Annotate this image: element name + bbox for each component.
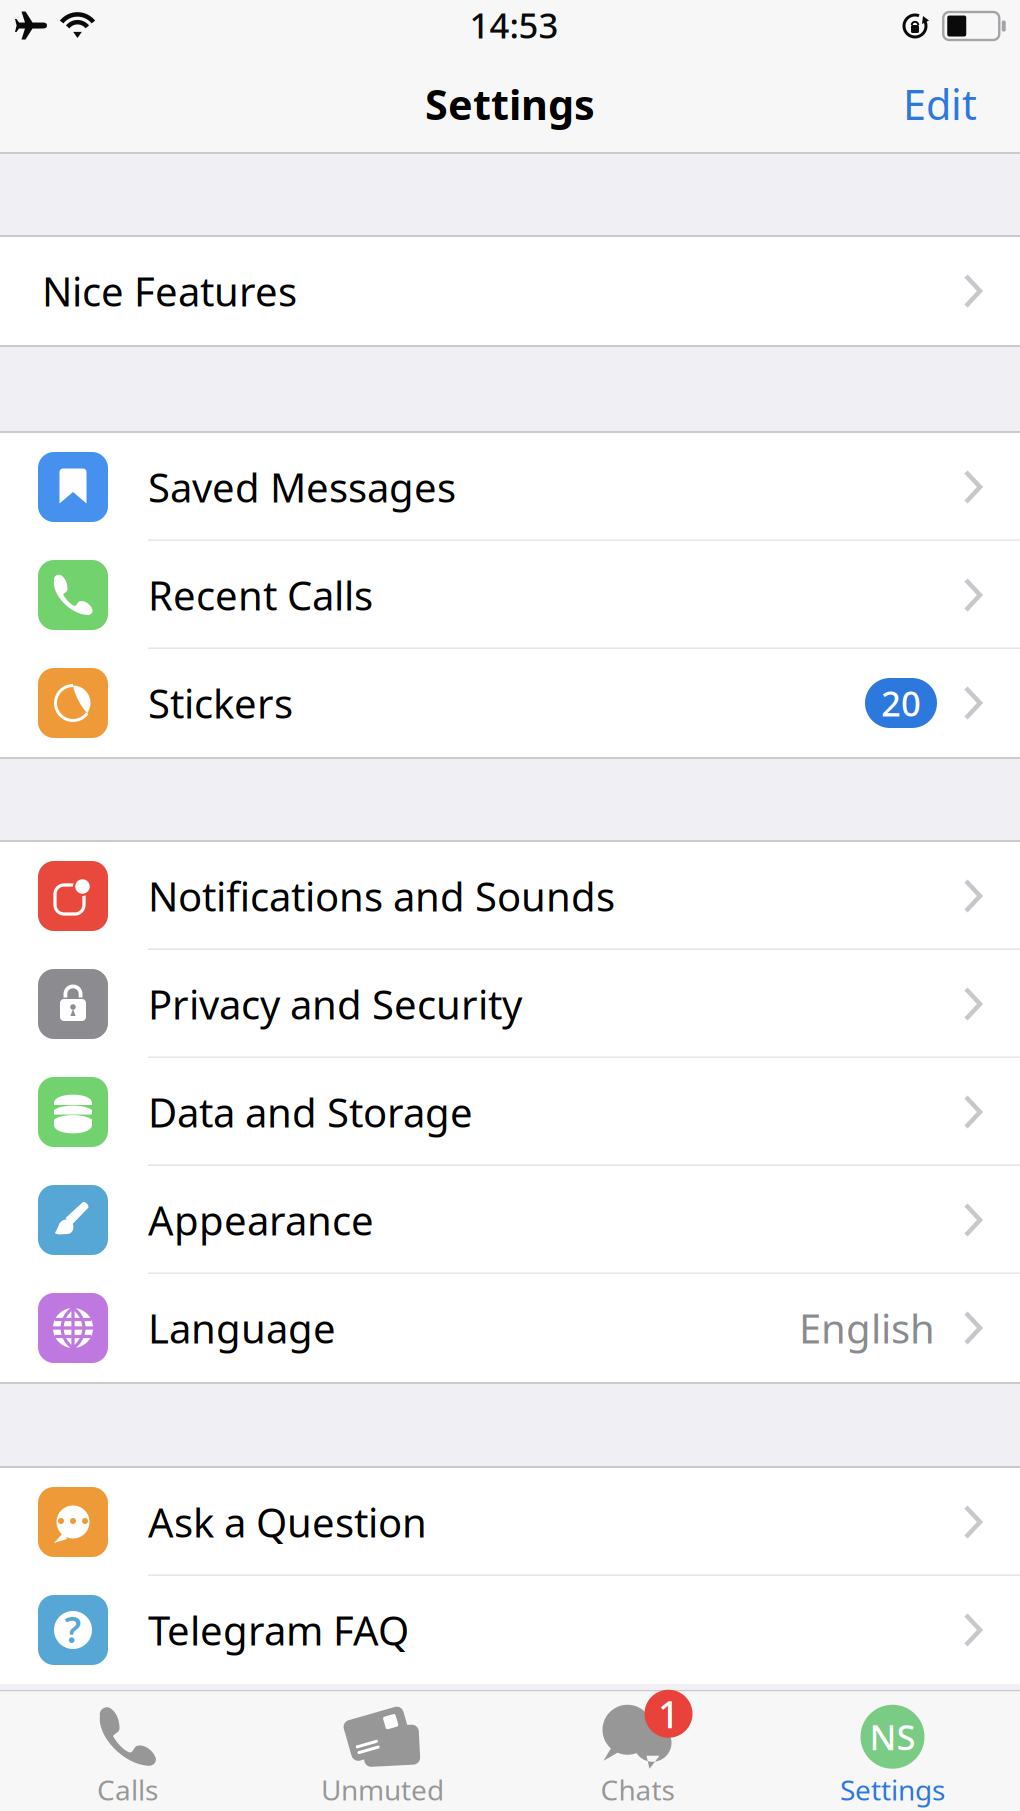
staticText: Stickers bbox=[148, 676, 293, 729]
staticText: English bbox=[799, 1301, 935, 1354]
button[interactable]: Saved Messages bbox=[0, 433, 1020, 541]
button[interactable]: Language bbox=[0, 1274, 1020, 1382]
staticText: Calls bbox=[97, 1771, 158, 1808]
staticText: Unmuted bbox=[321, 1771, 444, 1808]
staticText: Data and Storage bbox=[148, 1085, 473, 1138]
staticText: Appearance bbox=[148, 1193, 374, 1246]
staticText: Privacy and Security bbox=[148, 977, 522, 1030]
staticText: Telegram FAQ bbox=[148, 1603, 409, 1656]
button[interactable]: Edit bbox=[889, 65, 1020, 143]
button[interactable]: Stickers bbox=[0, 649, 1020, 757]
staticText: NS bbox=[869, 1714, 915, 1760]
staticText: Recent Calls bbox=[148, 568, 373, 621]
staticText: Settings bbox=[840, 1771, 945, 1808]
button[interactable]: Nice Features bbox=[0, 237, 1020, 345]
staticText: 1 bbox=[658, 1689, 679, 1739]
staticText: Notifications and Sounds bbox=[148, 869, 615, 922]
button[interactable]: Notifications and Sounds bbox=[0, 842, 1020, 950]
staticText: Language bbox=[148, 1301, 336, 1354]
button[interactable]: NS bbox=[765, 1692, 1020, 1811]
staticText: ? bbox=[64, 1605, 81, 1653]
staticText: Chats bbox=[600, 1771, 674, 1808]
button[interactable]: 1 bbox=[510, 1692, 765, 1811]
button[interactable]: Calls bbox=[0, 1692, 255, 1811]
button[interactable]: Data and Storage bbox=[0, 1058, 1020, 1166]
staticText: Nice Features bbox=[42, 264, 297, 317]
staticText: 14:53 bbox=[469, 2, 558, 48]
button[interactable]: Ask a Question bbox=[0, 1468, 1020, 1576]
button[interactable]: Unmuted bbox=[255, 1692, 510, 1811]
staticText: Edit bbox=[903, 77, 977, 131]
button[interactable]: Privacy and Security bbox=[0, 950, 1020, 1058]
staticText: Ask a Question bbox=[148, 1495, 427, 1548]
button[interactable]: ? bbox=[0, 1576, 1020, 1684]
button[interactable]: Recent Calls bbox=[0, 541, 1020, 649]
staticText: 20 bbox=[881, 680, 921, 726]
staticText: Saved Messages bbox=[148, 460, 456, 513]
staticText: Settings bbox=[425, 77, 595, 131]
button[interactable]: Appearance bbox=[0, 1166, 1020, 1274]
